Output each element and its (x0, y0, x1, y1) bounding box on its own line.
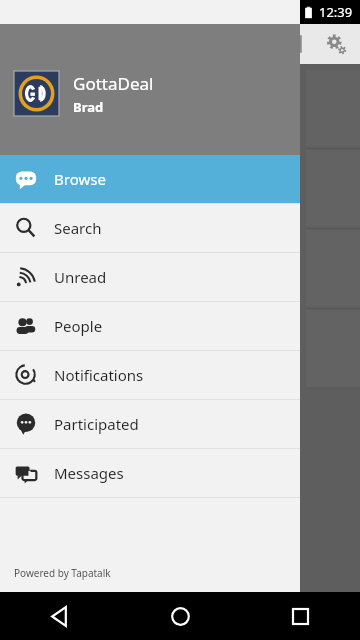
staticText: Brad (73, 98, 104, 116)
button[interactable]: People (0, 302, 300, 350)
staticText: Notifications (54, 365, 144, 385)
button[interactable]: Home (120, 592, 240, 640)
button[interactable]: Participated (0, 400, 300, 448)
button[interactable]: Recent apps (240, 592, 360, 640)
staticText: People (54, 316, 103, 336)
button[interactable]: GottaDeal (0, 24, 300, 155)
staticText: Powered by Tapatalk (14, 566, 111, 580)
button[interactable]: Settings (314, 24, 358, 64)
staticText: Search (54, 218, 102, 238)
button[interactable]: Log out (270, 24, 314, 64)
button[interactable]: Search (0, 204, 300, 252)
staticText: Messages (54, 463, 124, 483)
staticText: GottaDeal (73, 72, 154, 95)
staticText: 12:39 (319, 3, 353, 21)
button[interactable]: Unread (0, 253, 300, 301)
staticText: Unread (54, 267, 107, 287)
staticText: Browse (54, 169, 106, 189)
button[interactable]: Notifications (0, 351, 300, 399)
staticText: Participated (54, 414, 139, 434)
button[interactable]: Browse (0, 155, 300, 203)
button[interactable]: Messages (0, 449, 300, 497)
button[interactable]: Back (0, 592, 120, 640)
